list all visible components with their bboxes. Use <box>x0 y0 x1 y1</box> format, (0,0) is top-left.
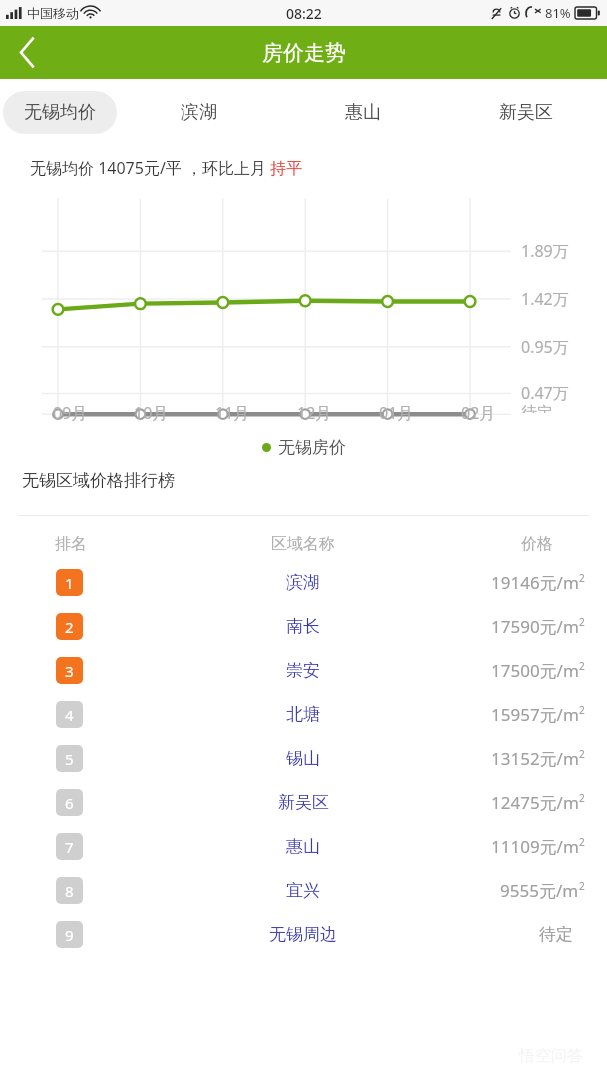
staticText: 17500元/m <box>491 659 579 682</box>
staticText: 滨湖 <box>181 101 217 124</box>
staticText: 2 <box>579 747 585 761</box>
staticText: 锡山 <box>286 748 320 769</box>
staticText: 15957元/m <box>491 703 579 726</box>
staticText: 09月 <box>53 402 88 424</box>
staticText: 待定 <box>521 403 553 413</box>
staticText: 宜兴 <box>286 880 320 901</box>
staticText: 81% <box>545 4 571 22</box>
staticText: 惠山 <box>286 836 320 857</box>
staticText: 0.47万 <box>521 382 569 404</box>
staticText: 9 <box>65 925 74 945</box>
staticText: 3 <box>65 661 74 681</box>
staticText: 价格 <box>521 534 553 554</box>
button[interactable]: 6 <box>0 780 607 824</box>
button[interactable]: 4 <box>0 692 607 736</box>
staticText: 11109元/m <box>491 835 579 858</box>
button[interactable]: 惠山 <box>281 79 444 145</box>
staticText: 中国移动 <box>27 5 79 21</box>
staticText: 无锡周边 <box>269 924 337 945</box>
staticText: 崇安 <box>286 660 320 681</box>
staticText: 无锡均价 14075元/平 ，环比上月 持平 <box>30 157 303 179</box>
staticText: 1.89万 <box>521 240 569 262</box>
staticText: 无锡房价 <box>278 437 346 458</box>
staticText: 房价走势 <box>262 40 346 66</box>
staticText: 悟空问答 <box>519 1046 583 1066</box>
button[interactable]: 3 <box>0 648 607 692</box>
staticText: 12475元/m <box>491 791 579 814</box>
staticText: 17590元/m <box>491 615 579 638</box>
staticText: 01月 <box>379 402 414 424</box>
staticText: 无锡区域价格排行榜 <box>22 470 175 491</box>
button[interactable]: 无锡均价 <box>3 91 117 134</box>
staticText: 新吴区 <box>278 792 329 813</box>
staticText: 2 <box>579 615 585 629</box>
staticText: 11月 <box>215 402 250 424</box>
staticText: 4 <box>65 705 74 725</box>
staticText: 19146元/m <box>491 571 579 594</box>
button[interactable]: 2 <box>0 604 607 648</box>
staticText: 8 <box>65 881 74 901</box>
button[interactable]: 新吴区 <box>444 79 607 145</box>
staticText: 新吴区 <box>499 101 553 124</box>
button[interactable]: 5 <box>0 736 607 780</box>
staticText: 2 <box>579 659 585 673</box>
staticText: 待定 <box>539 924 573 945</box>
button[interactable]: 8 <box>0 868 607 912</box>
staticText: 10月 <box>134 402 169 424</box>
staticText: 2 <box>579 703 585 717</box>
staticText: 2 <box>579 571 585 585</box>
staticText: 2 <box>579 879 585 893</box>
staticText: 7 <box>65 837 74 857</box>
staticText: 0.95万 <box>521 336 569 358</box>
button[interactable]: 9 <box>0 912 607 956</box>
staticText: 北塘 <box>286 704 320 725</box>
staticText: 5 <box>65 749 74 769</box>
staticText: 02月 <box>461 402 496 424</box>
staticText: 区域名称 <box>271 534 335 554</box>
staticText: 排名 <box>55 534 87 554</box>
staticText: 滨湖 <box>286 572 320 593</box>
staticText: 1 <box>65 573 74 593</box>
button[interactable]: 滨湖 <box>117 79 281 145</box>
staticText: 2 <box>579 791 585 805</box>
staticText: 6 <box>65 793 74 813</box>
staticText: 1.42万 <box>521 288 569 310</box>
staticText: 2 <box>579 835 585 849</box>
staticText: 08:22 <box>286 4 322 23</box>
staticText: 南长 <box>286 616 320 637</box>
staticText: 13152元/m <box>491 747 579 770</box>
button[interactable]: Back <box>0 26 54 79</box>
staticText: 2 <box>65 617 74 637</box>
button[interactable]: 7 <box>0 824 607 868</box>
staticText: 无锡均价 <box>24 101 96 124</box>
button[interactable]: 1 <box>0 560 607 604</box>
staticText: 惠山 <box>345 101 381 124</box>
staticText: 12月 <box>297 402 332 424</box>
staticText: 9555元/m <box>500 879 579 902</box>
